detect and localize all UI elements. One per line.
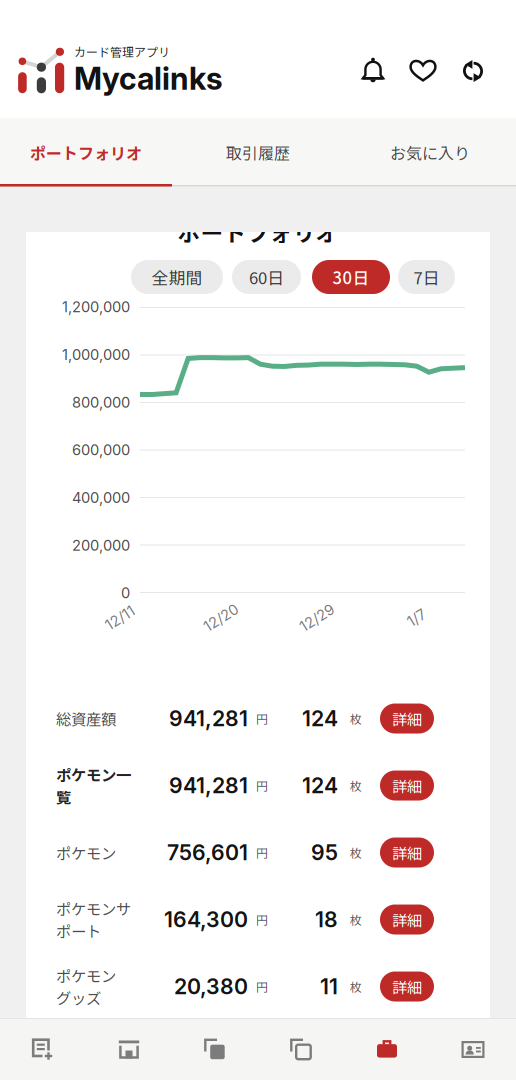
staticText: 1,000,000 bbox=[62, 346, 130, 363]
staticText: 枚 bbox=[350, 844, 362, 861]
staticText: 枚 bbox=[350, 710, 362, 727]
staticText: 124 bbox=[302, 773, 338, 798]
staticText: 円 bbox=[256, 777, 268, 794]
staticText: 941,281 bbox=[169, 773, 248, 798]
staticText: 400,000 bbox=[72, 489, 130, 506]
staticText: 12/11 bbox=[104, 609, 136, 627]
staticText: 詳細 bbox=[392, 908, 422, 931]
staticText: 200,000 bbox=[72, 536, 130, 554]
button[interactable]: 60日 bbox=[232, 260, 301, 294]
staticText: ポートフォリオ bbox=[30, 141, 142, 164]
staticText: 7日 bbox=[413, 265, 439, 289]
button[interactable]: Register card bbox=[0, 1019, 86, 1079]
staticText: 1,200,000 bbox=[62, 298, 130, 316]
button[interactable]: ポケモングッズ bbox=[26, 953, 490, 1020]
staticText: ポケモン bbox=[56, 841, 116, 864]
staticText: 詳細 bbox=[392, 975, 422, 998]
button[interactable]: Collection bbox=[172, 1019, 258, 1079]
staticText: 詳細 bbox=[392, 841, 422, 864]
staticText: 円 bbox=[256, 978, 268, 995]
button[interactable]: 7日 bbox=[398, 260, 455, 294]
staticText: 756,601 bbox=[167, 840, 248, 865]
staticText: 60日 bbox=[249, 265, 284, 289]
staticText: Mycalinks bbox=[74, 60, 223, 97]
staticText: 円 bbox=[256, 710, 268, 727]
button[interactable]: 全期間 bbox=[131, 260, 223, 294]
staticText: 円 bbox=[256, 911, 268, 928]
staticText: 124 bbox=[302, 706, 338, 731]
staticText: 164,300 bbox=[164, 907, 248, 932]
staticText: 詳細 bbox=[392, 774, 422, 797]
staticText: 12/29 bbox=[298, 609, 336, 627]
staticText: ポケモンサポート bbox=[56, 897, 131, 942]
staticText: 総資産額 bbox=[56, 707, 116, 730]
staticText: 95 bbox=[311, 840, 338, 865]
button[interactable]: 取引履歴 bbox=[172, 118, 344, 186]
staticText: 全期間 bbox=[151, 265, 202, 289]
staticText: 円 bbox=[256, 844, 268, 861]
staticText: 11 bbox=[320, 974, 338, 999]
staticText: お気に入り bbox=[390, 141, 470, 164]
button[interactable]: Notifications bbox=[358, 56, 388, 86]
staticText: 20,380 bbox=[174, 974, 248, 999]
button[interactable]: ポートフォリオ bbox=[0, 118, 172, 186]
staticText: 30日 bbox=[332, 265, 369, 289]
button[interactable]: カード管理アプリ bbox=[18, 43, 223, 99]
button[interactable]: Account bbox=[430, 1019, 516, 1079]
button[interactable]: Shop bbox=[86, 1019, 172, 1079]
staticText: 1/7 bbox=[407, 609, 426, 627]
button[interactable]: Portfolio bbox=[344, 1019, 430, 1079]
staticText: カード管理アプリ bbox=[74, 43, 170, 60]
button[interactable]: ポケモン一覧 bbox=[26, 752, 490, 819]
button[interactable]: Decks bbox=[258, 1019, 344, 1079]
staticText: 12/20 bbox=[202, 609, 240, 627]
button[interactable]: Favorites bbox=[408, 56, 438, 86]
staticText: 枚 bbox=[350, 777, 362, 794]
button[interactable]: 総資産額 bbox=[26, 685, 490, 752]
staticText: 600,000 bbox=[72, 441, 130, 459]
button[interactable]: ポケモンサポート bbox=[26, 886, 490, 953]
staticText: 詳細 bbox=[392, 707, 422, 730]
staticText: 800,000 bbox=[72, 393, 130, 411]
staticText: ポートフォリオ bbox=[177, 215, 338, 248]
button[interactable]: ポケモン bbox=[26, 819, 490, 886]
staticText: ポケモン一覧 bbox=[56, 763, 131, 808]
staticText: ポケモングッズ bbox=[56, 964, 116, 1009]
button[interactable]: 30日 bbox=[312, 260, 390, 294]
staticText: 枚 bbox=[350, 978, 362, 995]
staticText: 0 bbox=[121, 584, 130, 602]
staticText: 取引履歴 bbox=[226, 141, 290, 164]
staticText: 枚 bbox=[350, 911, 362, 928]
button[interactable]: お気に入り bbox=[344, 118, 516, 186]
button[interactable]: Sync bbox=[458, 56, 488, 86]
staticText: 18 bbox=[315, 907, 338, 932]
staticText: 941,281 bbox=[169, 706, 248, 731]
